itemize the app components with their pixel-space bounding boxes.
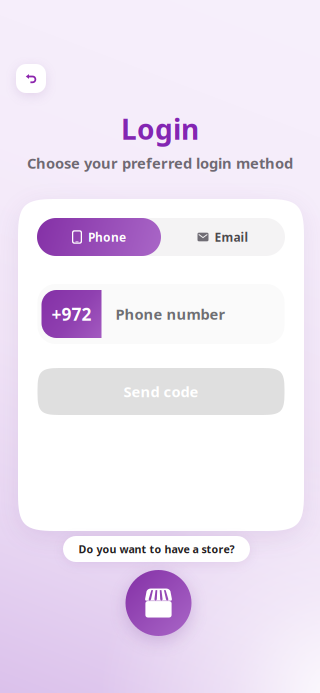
staticText: Phone bbox=[88, 229, 126, 245]
button[interactable]: Back bbox=[16, 64, 46, 93]
button[interactable]: Phone bbox=[37, 218, 161, 256]
staticText: Email bbox=[214, 229, 248, 245]
staticText: Login bbox=[121, 110, 199, 148]
button[interactable]: Create a store bbox=[125, 570, 191, 636]
staticText: Phone number bbox=[115, 304, 225, 324]
button[interactable]: Email bbox=[161, 218, 285, 256]
staticText: Do you want to have a store? bbox=[78, 542, 234, 556]
staticText: Choose your preferred login method bbox=[27, 153, 293, 173]
staticText: Send code bbox=[123, 382, 198, 401]
button[interactable]: Send code bbox=[37, 368, 284, 415]
staticText: +972 bbox=[51, 302, 91, 325]
button[interactable]: Do you want to have a store? bbox=[63, 536, 250, 562]
